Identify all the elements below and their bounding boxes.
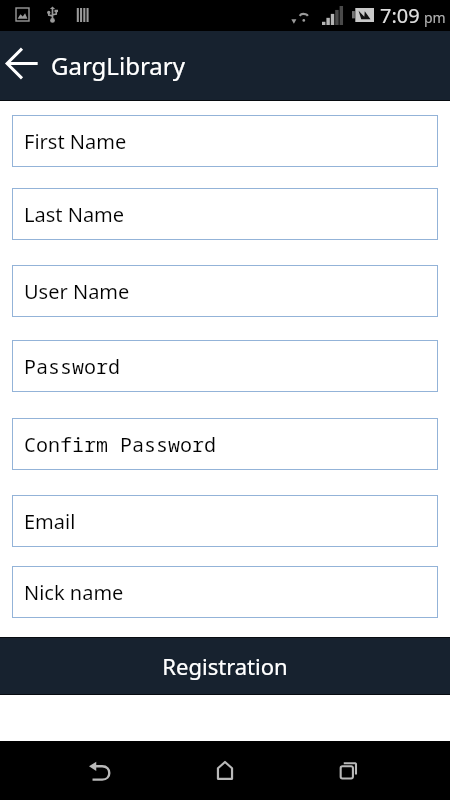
- button[interactable]: Navigate up: [0, 31, 46, 100]
- staticText: pm: [424, 8, 446, 27]
- button[interactable]: Recent apps: [318, 741, 378, 800]
- staticText: GargLibrary: [51, 49, 185, 82]
- staticText: User Name: [24, 278, 130, 305]
- button[interactable]: Registration: [0, 638, 450, 694]
- button[interactable]: Back: [70, 741, 130, 800]
- button[interactable]: Home: [195, 741, 255, 800]
- button[interactable]: Email: [12, 495, 438, 547]
- staticText: 7:09: [380, 2, 420, 29]
- button[interactable]: Confirm Password: [12, 418, 438, 470]
- staticText: Last Name: [24, 201, 125, 228]
- button[interactable]: Password: [12, 340, 438, 392]
- staticText: First Name: [24, 128, 127, 155]
- button[interactable]: Nick name: [12, 566, 438, 618]
- staticText: Email: [24, 508, 76, 535]
- button[interactable]: User Name: [12, 265, 438, 317]
- button[interactable]: First Name: [12, 115, 438, 167]
- staticText: Confirm Password: [24, 431, 216, 458]
- button[interactable]: Last Name: [12, 188, 438, 240]
- staticText: Registration: [162, 651, 288, 681]
- staticText: Nick name: [24, 579, 124, 606]
- staticText: Password: [24, 353, 120, 380]
